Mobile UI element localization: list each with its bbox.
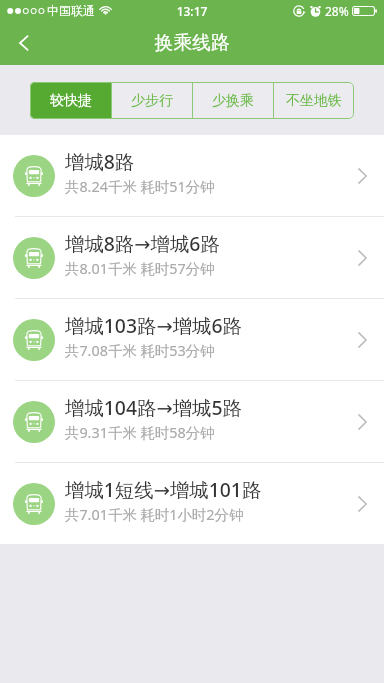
staticText: 增城103路→增城6路 bbox=[65, 312, 242, 338]
staticText: 不坐地铁 bbox=[286, 92, 342, 110]
staticText: 少步行 bbox=[131, 92, 173, 110]
staticText: 共7.01千米 耗时1小时2分钟 bbox=[65, 505, 244, 525]
staticText: 共8.24千米 耗时51分钟 bbox=[65, 177, 215, 197]
staticText: 换乘线路 bbox=[0, 31, 384, 55]
button[interactable]: 不坐地铁 bbox=[274, 82, 354, 119]
staticText: 中国联通 bbox=[47, 3, 95, 18]
button[interactable]: 较快捷 bbox=[30, 82, 111, 119]
staticText: 少换乘 bbox=[212, 92, 254, 110]
staticText: 增城8路→增城6路 bbox=[65, 230, 220, 256]
button[interactable]: Back bbox=[0, 21, 48, 65]
staticText: 较快捷 bbox=[50, 92, 92, 110]
button[interactable]: 增城1短线→增城101路 bbox=[0, 463, 384, 544]
button[interactable]: 少步行 bbox=[112, 82, 192, 119]
button[interactable]: 增城103路→增城6路 bbox=[0, 299, 384, 380]
button[interactable]: 增城8路→增城6路 bbox=[0, 217, 384, 298]
staticText: 28% bbox=[325, 3, 349, 19]
staticText: 增城104路→增城5路 bbox=[65, 394, 242, 420]
button[interactable]: 增城8路 bbox=[0, 135, 384, 216]
staticText: 共9.31千米 耗时58分钟 bbox=[65, 423, 215, 443]
button[interactable]: 增城104路→增城5路 bbox=[0, 381, 384, 462]
button[interactable]: 少换乘 bbox=[193, 82, 273, 119]
staticText: 增城8路 bbox=[65, 148, 135, 174]
staticText: 增城1短线→增城101路 bbox=[65, 476, 262, 502]
staticText: 共8.01千米 耗时57分钟 bbox=[65, 259, 215, 279]
staticText: 13:17 bbox=[0, 3, 384, 19]
staticText: 共7.08千米 耗时53分钟 bbox=[65, 341, 215, 361]
